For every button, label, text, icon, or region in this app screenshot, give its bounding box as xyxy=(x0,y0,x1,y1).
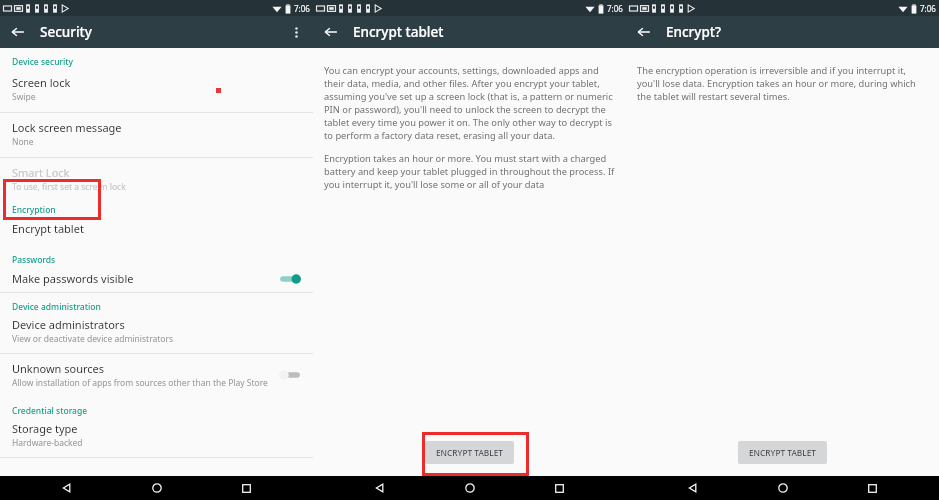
button[interactable]: Back xyxy=(632,20,656,44)
staticText: Security xyxy=(40,23,92,41)
staticText: Screen lock xyxy=(12,75,71,90)
button[interactable]: Unknown sources xyxy=(0,354,313,397)
button[interactable]: Lock screen message xyxy=(0,113,313,157)
staticText: Make passwords visible xyxy=(12,271,134,286)
button[interactable]: More options xyxy=(284,20,308,44)
button[interactable]: Back xyxy=(56,477,78,499)
staticText: None xyxy=(12,136,34,148)
button[interactable]: Screen lock xyxy=(0,70,313,112)
staticText: Allow installation of apps from sources … xyxy=(12,377,268,389)
staticText: Passwords xyxy=(12,254,56,266)
button[interactable]: Home xyxy=(459,477,481,499)
staticText: Unknown sources xyxy=(12,361,105,376)
staticText: ENCRYPT TABLET xyxy=(436,447,503,458)
button[interactable]: Smart Lock xyxy=(0,158,313,199)
staticText: The encryption operation is irreversible… xyxy=(637,64,928,103)
staticText: Storage type xyxy=(12,421,78,436)
button[interactable]: Recents xyxy=(235,477,257,499)
staticText: Credential storage xyxy=(12,405,88,417)
button[interactable]: Make passwords visible xyxy=(0,269,313,292)
button[interactable]: Back xyxy=(319,20,343,44)
staticText: Encryption takes an hour or more. You mu… xyxy=(324,152,615,191)
staticText: Hardware-backed xyxy=(12,437,83,449)
staticText: Device administrators xyxy=(12,317,125,332)
staticText: Encrypt? xyxy=(666,23,722,41)
button[interactable]: ENCRYPT TABLET xyxy=(425,441,514,464)
button[interactable]: Home xyxy=(772,477,794,499)
button[interactable]: Back xyxy=(6,20,30,44)
staticText: Encryption xyxy=(12,204,56,216)
staticText: View or deactivate device administrators xyxy=(12,333,174,345)
button[interactable]: Recents xyxy=(548,477,570,499)
staticText: You can encrypt your accounts, settings,… xyxy=(324,64,615,142)
staticText: Smart Lock xyxy=(12,165,70,180)
button[interactable]: Encrypt tablet xyxy=(0,219,313,242)
staticText: 7:06 xyxy=(294,3,310,14)
staticText: Encrypt tablet xyxy=(353,23,444,41)
button[interactable]: Back xyxy=(369,477,391,499)
staticText: To use, first set a screen lock xyxy=(12,181,126,193)
button[interactable]: Back xyxy=(682,477,704,499)
button[interactable]: Device administrators xyxy=(0,315,313,353)
staticText: Encrypt tablet xyxy=(12,221,84,236)
staticText: Swipe xyxy=(12,91,36,103)
staticText: 7:06 xyxy=(920,3,936,14)
button[interactable]: Home xyxy=(146,477,168,499)
staticText: 7:06 xyxy=(607,3,623,14)
staticText: Device security xyxy=(12,56,74,68)
staticText: ENCRYPT TABLET xyxy=(749,447,816,458)
button[interactable]: ENCRYPT TABLET xyxy=(738,441,827,464)
button[interactable]: Recents xyxy=(861,477,883,499)
staticText: Lock screen message xyxy=(12,120,122,135)
staticText: Device administration xyxy=(12,301,101,313)
button[interactable]: Storage type xyxy=(0,419,313,457)
